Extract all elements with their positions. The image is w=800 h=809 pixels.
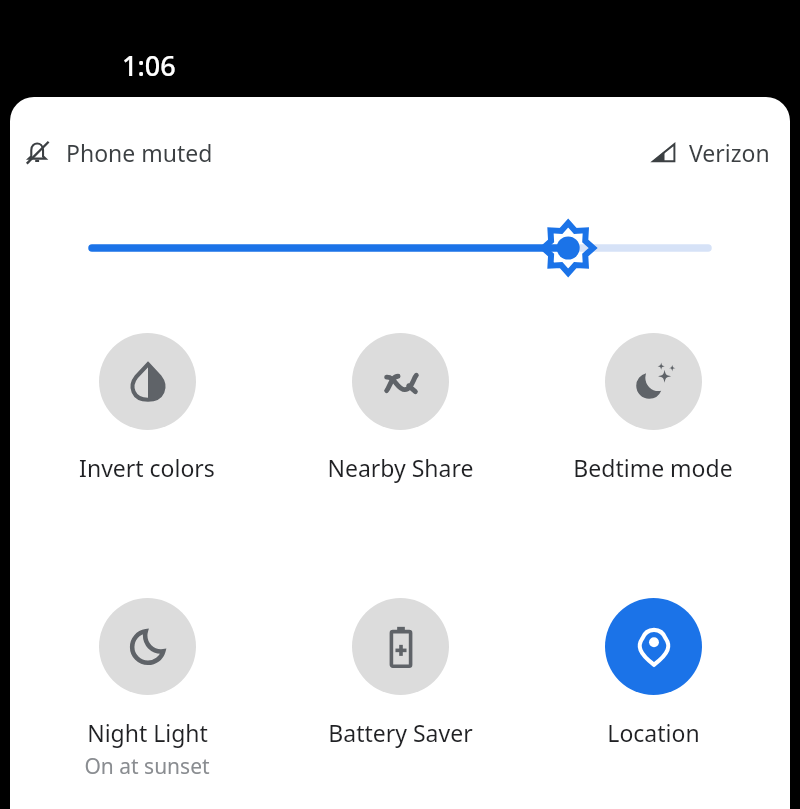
other: Phone muted	[24, 139, 52, 167]
button[interactable]: Night Light	[47, 598, 247, 781]
staticText: Invert colors	[79, 452, 215, 483]
staticText: 1:06	[122, 47, 176, 84]
button[interactable]: Location	[553, 598, 753, 748]
staticText: Location	[607, 717, 700, 748]
staticText: Bedtime mode	[573, 452, 733, 483]
button[interactable]: Phone muted	[24, 137, 213, 168]
button[interactable]: Bedtime mode	[553, 333, 753, 483]
button[interactable]: Signal strength	[651, 137, 770, 168]
staticText: Phone muted	[66, 137, 213, 168]
staticText: Battery Saver	[328, 717, 473, 748]
staticText: Verizon	[689, 137, 770, 168]
staticText: Nearby Share	[327, 452, 474, 483]
staticText: Night Light	[87, 717, 208, 748]
button[interactable]: Nearby Share	[300, 333, 500, 483]
other: Signal strength	[651, 140, 677, 166]
button[interactable]: Battery Saver	[300, 598, 500, 748]
button[interactable]: Invert colors	[47, 333, 247, 483]
staticText: On at sunset	[84, 752, 210, 781]
button[interactable]: Brightness	[68, 219, 732, 277]
